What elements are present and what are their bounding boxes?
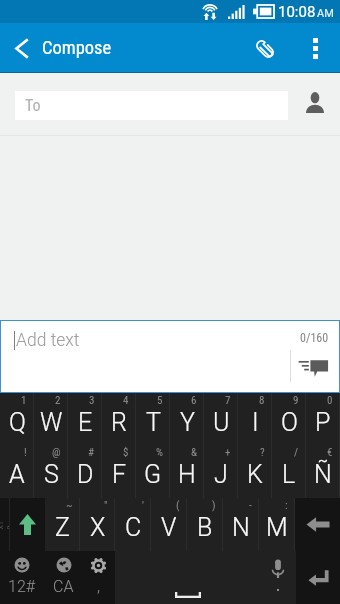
button[interactable]: 1: [0, 393, 34, 445]
button[interactable]: Enter: [296, 551, 340, 604]
staticText: &: [191, 446, 197, 459]
button[interactable]: 5: [136, 393, 170, 445]
button[interactable]: (: [151, 498, 187, 551]
staticText: 0: [327, 394, 333, 407]
button[interactable]: 12#: [0, 551, 44, 604]
button[interactable]: XT9: [0, 498, 9, 551]
staticText: !: [24, 446, 27, 459]
staticText: ~: [66, 499, 73, 512]
button[interactable]: 9: [272, 393, 306, 445]
staticText: AM: [317, 7, 334, 20]
button[interactable]: /: [272, 445, 306, 498]
button[interactable]: Shift: [10, 498, 45, 551]
staticText: %: [156, 446, 163, 459]
staticText: CA: [53, 577, 74, 596]
staticText: D: [77, 460, 94, 489]
staticText: +: [225, 446, 231, 459]
button[interactable]: Choose contact: [298, 85, 332, 119]
staticText: ?: [260, 446, 265, 459]
staticText: V: [161, 513, 177, 542]
staticText: :: [285, 499, 288, 512]
staticText: N: [232, 513, 250, 542]
staticText: C: [125, 513, 142, 542]
staticText: E: [78, 408, 93, 437]
staticText: L: [282, 460, 296, 489]
button[interactable]: ": [80, 498, 115, 551]
staticText: T: [146, 408, 161, 437]
staticText: -: [249, 499, 252, 512]
button[interactable]: &: [170, 445, 204, 498]
staticText: €: [327, 446, 333, 459]
staticText: 0/160: [300, 331, 329, 345]
button[interactable]: To: [15, 91, 288, 120]
staticText: 6: [191, 394, 197, 407]
staticText: H: [178, 460, 196, 489]
staticText: P: [315, 408, 331, 437]
button[interactable]: ': [115, 498, 151, 551]
staticText: Add text: [16, 330, 80, 351]
button[interactable]: 0: [306, 393, 340, 445]
button[interactable]: Backspace: [295, 498, 340, 551]
button[interactable]: Navigate up: [0, 23, 43, 73]
button[interactable]: #: [68, 445, 102, 498]
staticText: B: [197, 513, 213, 542]
staticText: Ñ: [314, 460, 332, 489]
button[interactable]: 2: [34, 393, 68, 445]
staticText: ): [212, 499, 216, 512]
staticText: ,: [97, 577, 101, 596]
staticText: 5: [157, 394, 163, 407]
staticText: K: [247, 460, 263, 489]
staticText: 8: [259, 394, 265, 407]
button[interactable]: 8: [238, 393, 272, 445]
button[interactable]: 3: [68, 393, 102, 445]
button[interactable]: ~: [45, 498, 80, 551]
staticText: (: [176, 499, 180, 512]
button[interactable]: More options: [291, 23, 340, 73]
staticText: ': [142, 499, 144, 512]
staticText: To: [25, 96, 41, 115]
button[interactable]: Voice input: [260, 551, 296, 604]
staticText: 9: [293, 394, 299, 407]
staticText: F: [112, 460, 127, 489]
staticText: 10:08: [278, 3, 316, 21]
button[interactable]: 6: [170, 393, 204, 445]
staticText: X: [90, 513, 106, 542]
button[interactable]: 7: [204, 393, 238, 445]
staticText: S: [44, 460, 59, 489]
staticText: #: [88, 446, 95, 459]
staticText: O: [281, 408, 298, 437]
button[interactable]: CA: [44, 551, 82, 604]
button[interactable]: +: [204, 445, 238, 498]
button[interactable]: @: [34, 445, 68, 498]
staticText: U: [213, 408, 230, 437]
staticText: 12#: [8, 577, 36, 596]
button[interactable]: %: [136, 445, 170, 498]
button[interactable]: -: [223, 498, 259, 551]
button[interactable]: !: [0, 445, 34, 498]
button[interactable]: ?: [238, 445, 272, 498]
staticText: R: [111, 408, 127, 437]
button[interactable]: ): [187, 498, 223, 551]
button[interactable]: €: [306, 445, 340, 498]
button[interactable]: 4: [102, 393, 136, 445]
staticText: I: [252, 408, 259, 437]
button[interactable]: $: [102, 445, 136, 498]
staticText: 4: [123, 394, 129, 407]
button[interactable]: Send: [298, 354, 338, 380]
staticText: 2: [55, 394, 61, 407]
button[interactable]: ,: [82, 551, 115, 604]
staticText: 3: [89, 394, 95, 407]
staticText: A: [9, 460, 25, 489]
button[interactable]: Space: [115, 551, 260, 604]
button[interactable]: Add text: [1, 321, 339, 392]
staticText: /: [294, 446, 299, 459]
staticText: @: [52, 446, 61, 459]
staticText: Z: [55, 513, 70, 542]
staticText: G: [144, 460, 162, 489]
staticText: M: [266, 513, 288, 542]
staticText: Q: [9, 408, 26, 437]
button[interactable]: Attach: [245, 29, 285, 69]
staticText: 7: [225, 394, 231, 407]
staticText: W: [40, 408, 63, 437]
button[interactable]: :: [259, 498, 295, 551]
